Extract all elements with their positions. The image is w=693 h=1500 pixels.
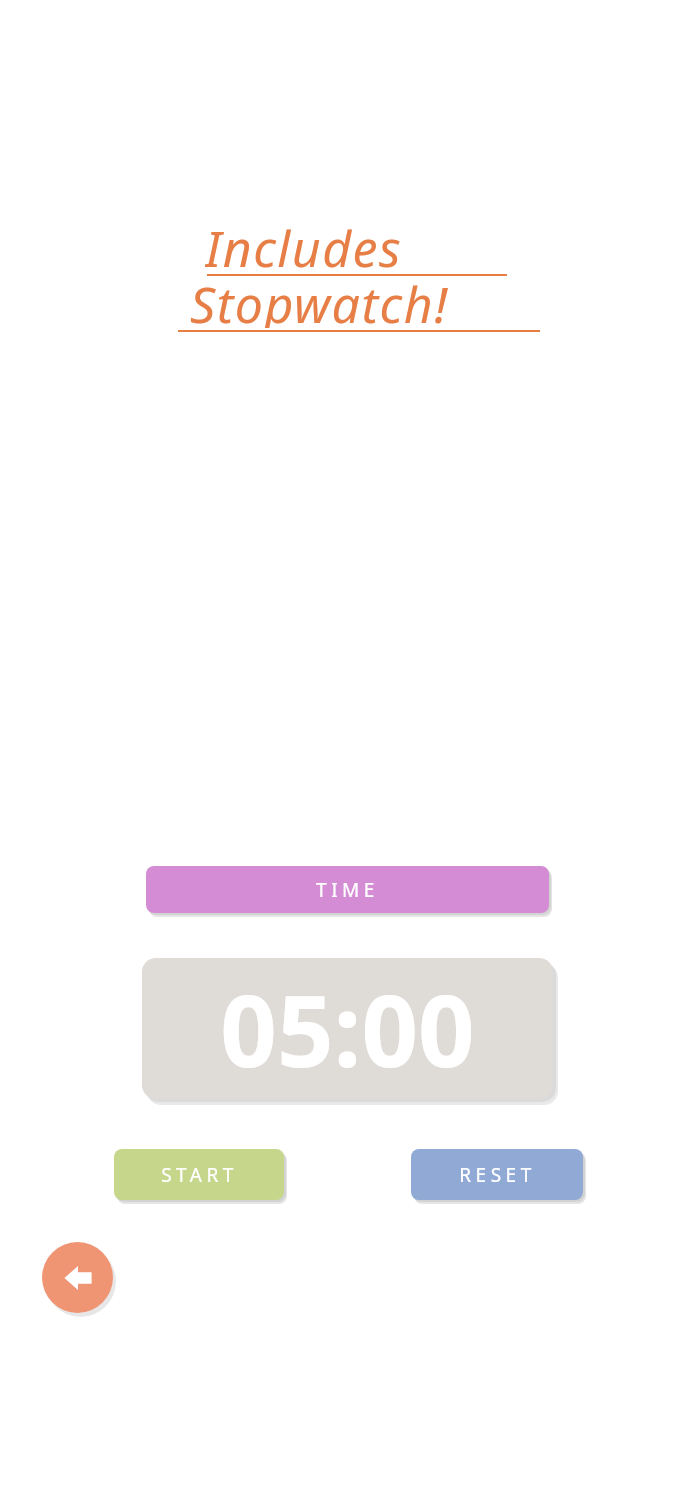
- staticText: Includes: [205, 214, 403, 272]
- staticText: 05:00: [220, 961, 475, 1096]
- staticText: Stopwatch!: [190, 270, 449, 328]
- staticText: RESET: [459, 1162, 536, 1188]
- staticText: START: [161, 1162, 238, 1188]
- button[interactable]: START: [114, 1149, 284, 1200]
- button[interactable]: RESET: [411, 1149, 583, 1200]
- button[interactable]: TIME: [146, 866, 549, 913]
- button[interactable]: Back: [42, 1242, 113, 1313]
- staticText: TIME: [316, 877, 379, 903]
